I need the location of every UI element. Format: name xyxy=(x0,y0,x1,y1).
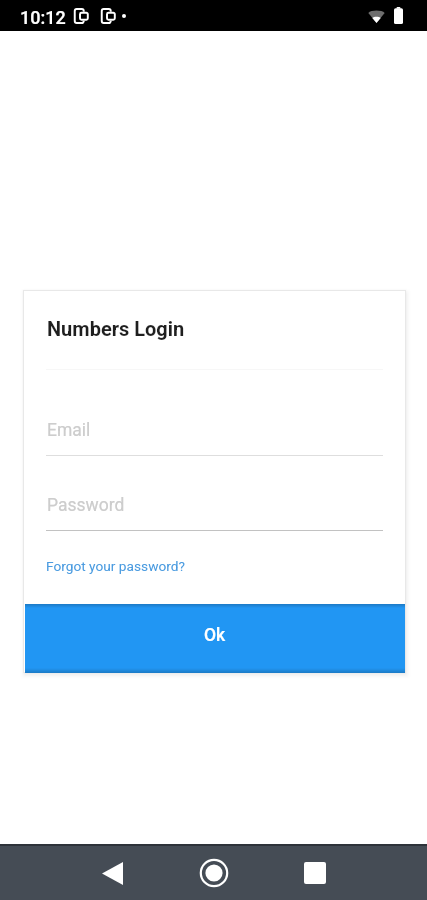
button[interactable]: Home xyxy=(190,849,238,897)
staticText: Ok xyxy=(204,625,226,646)
staticText: Numbers Login xyxy=(47,317,185,340)
button[interactable]: Email xyxy=(46,414,383,456)
button[interactable]: Back xyxy=(88,849,136,897)
button[interactable]: Password xyxy=(46,489,383,531)
staticText: 10:12 xyxy=(20,7,66,28)
staticText: Password xyxy=(47,495,125,516)
button[interactable]: Forgot your password? xyxy=(46,558,185,574)
button[interactable]: Recent apps xyxy=(291,849,339,897)
staticText: Email xyxy=(47,420,91,441)
button[interactable]: Ok xyxy=(25,604,405,673)
staticText: Forgot your password? xyxy=(46,558,185,574)
